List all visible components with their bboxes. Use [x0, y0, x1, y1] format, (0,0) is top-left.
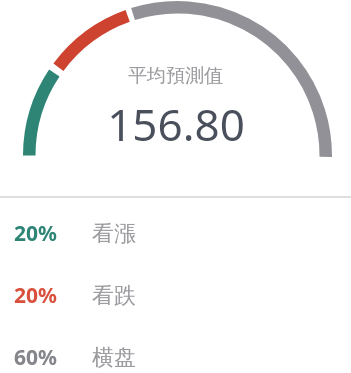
staticText: 看漲 [92, 220, 136, 248]
staticText: 60% [14, 343, 57, 372]
button[interactable]: 20% [0, 198, 351, 248]
staticText: 看跌 [92, 282, 136, 310]
staticText: 156.80 [107, 94, 245, 154]
staticText: 横盘 [92, 344, 136, 372]
staticText: 平均預測值 [128, 64, 223, 88]
staticText: 20% [14, 281, 57, 310]
button[interactable]: 60% [0, 310, 351, 372]
button[interactable]: 20% [0, 248, 351, 310]
staticText: 20% [14, 219, 57, 248]
